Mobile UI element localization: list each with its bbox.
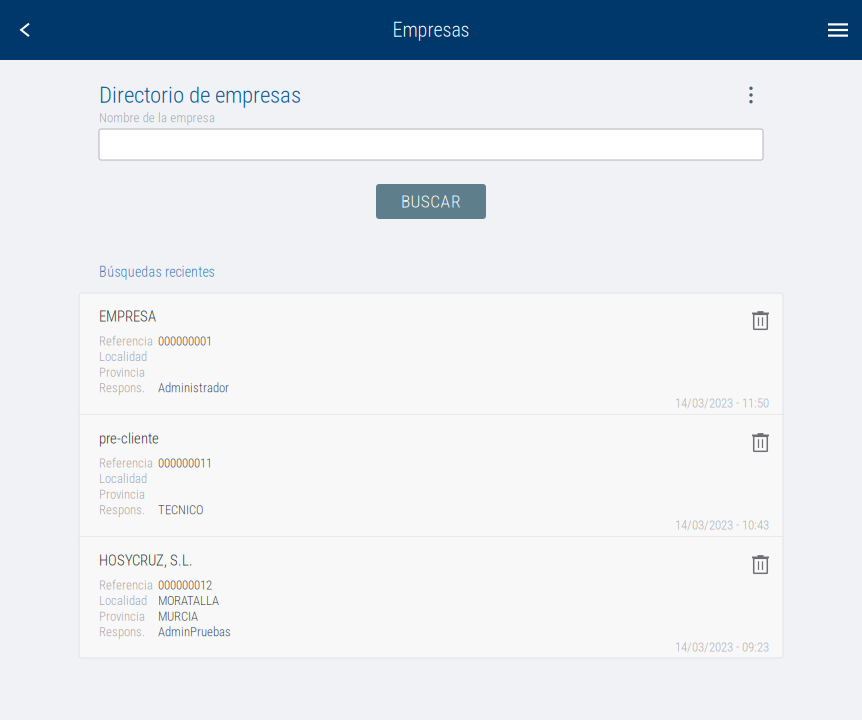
staticText: TECNICO — [158, 503, 203, 517]
staticText: Referencia — [99, 578, 153, 593]
staticText: 14/03/2023 - 09:23 — [675, 640, 769, 655]
staticText: Respons. — [99, 625, 145, 639]
button[interactable]: Delete — [740, 309, 769, 334]
button[interactable]: Menu — [816, 0, 860, 60]
staticText: EMPRESA — [99, 308, 156, 325]
button[interactable]: BUSCAR — [376, 184, 486, 219]
staticText: MORATALLA — [158, 593, 219, 608]
staticText: AdminPruebas — [158, 625, 231, 639]
staticText: 14/03/2023 - 11:50 — [675, 396, 769, 411]
button[interactable]: Back — [3, 0, 47, 60]
staticText: MURCIA — [158, 609, 198, 624]
staticText: Provincia — [99, 365, 145, 380]
staticText: Directorio de empresas — [99, 82, 301, 108]
staticText: BUSCAR — [401, 191, 461, 212]
staticText: Referencia — [99, 334, 153, 349]
staticText: 000000001 — [158, 334, 212, 349]
staticText: Administrador — [158, 381, 229, 395]
staticText: Empresas — [392, 18, 469, 42]
staticText: Respons. — [99, 503, 145, 517]
staticText: 14/03/2023 - 10:43 — [675, 518, 769, 533]
button[interactable]: Delete — [740, 553, 769, 578]
staticText: Localidad — [99, 593, 147, 608]
staticText: Localidad — [99, 471, 147, 486]
staticText: Provincia — [99, 609, 145, 624]
staticText: 000000011 — [158, 456, 212, 471]
staticText: Respons. — [99, 381, 145, 395]
staticText: Provincia — [99, 487, 145, 502]
staticText: pre-cliente — [99, 430, 159, 447]
staticText: Búsquedas recientes — [99, 264, 215, 280]
staticText: HOSYCRUZ, S.L. — [99, 552, 193, 569]
staticText: Referencia — [99, 456, 153, 471]
button[interactable]: Delete — [740, 431, 769, 456]
button[interactable]: More options — [737, 82, 765, 108]
staticText: 000000012 — [158, 578, 212, 593]
staticText: Localidad — [99, 349, 147, 364]
staticText: Nombre de la empresa — [99, 111, 215, 125]
